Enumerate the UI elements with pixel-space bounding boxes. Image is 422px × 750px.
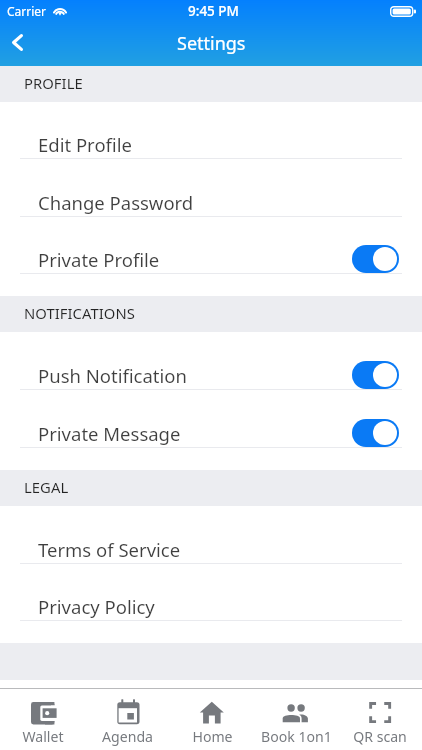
staticText: Book 1on1 <box>261 727 332 746</box>
staticText: Push Notification <box>38 363 187 388</box>
staticText: Terms of Service <box>38 537 181 562</box>
staticText: PROFILE <box>24 73 83 93</box>
button[interactable]: Push Notification <box>0 332 422 390</box>
staticText: Edit Profile <box>38 132 132 157</box>
staticText: Carrier <box>7 3 47 19</box>
staticText: NOTIFICATIONS <box>24 303 135 323</box>
staticText: Privacy Policy <box>38 594 155 619</box>
button[interactable]: Edit Profile <box>0 102 422 159</box>
staticText: Agenda <box>102 727 153 746</box>
staticText: LEGAL <box>24 477 69 497</box>
staticText: QR scan <box>353 727 407 746</box>
staticText: 9:45 PM <box>188 2 239 20</box>
staticText: Settings <box>177 31 246 56</box>
staticText: Home <box>192 727 233 746</box>
button[interactable]: Change Password <box>0 159 422 217</box>
button[interactable]: Privacy Policy <box>0 564 422 621</box>
staticText: Wallet <box>22 727 64 746</box>
button[interactable]: QR scan <box>338 689 422 750</box>
staticText: Change Password <box>38 190 194 215</box>
staticText: Private Profile <box>38 247 160 272</box>
button[interactable]: Private Profile <box>0 217 422 274</box>
button[interactable]: Home <box>170 689 254 750</box>
button[interactable]: Back <box>0 22 38 66</box>
button[interactable]: Book 1on1 <box>254 689 338 750</box>
staticText: Private Message <box>38 421 181 446</box>
button[interactable]: Private Message <box>0 390 422 448</box>
button[interactable]: Terms of Service <box>0 506 422 564</box>
button[interactable]: Wallet <box>0 689 85 750</box>
button[interactable]: Agenda <box>85 689 170 750</box>
